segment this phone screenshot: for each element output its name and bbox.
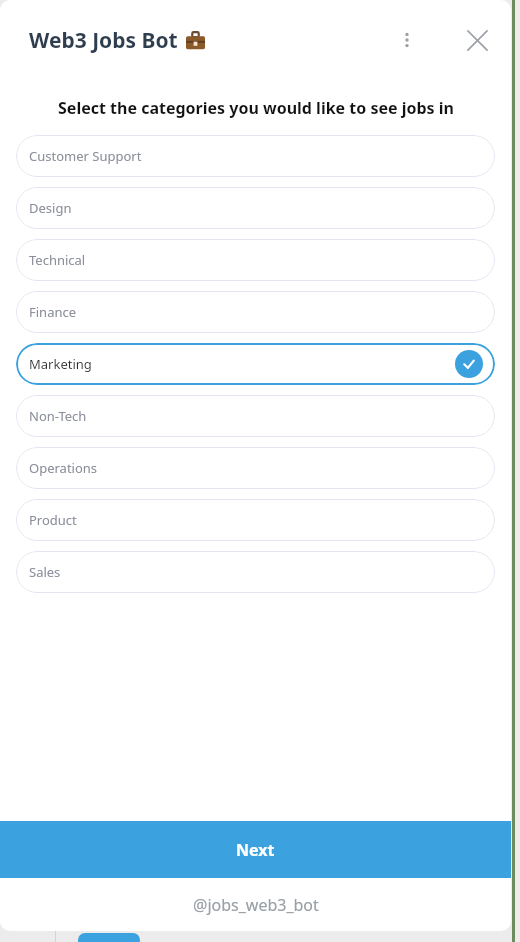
staticText: Technical (29, 251, 86, 269)
staticText: Customer Support (29, 147, 142, 165)
button[interactable]: Customer Support (16, 135, 495, 177)
staticText: Non-Tech (29, 407, 87, 425)
button[interactable]: Non-Tech (16, 395, 495, 437)
button[interactable]: Product (16, 499, 495, 541)
staticText: Marketing (29, 355, 92, 373)
staticText: Sales (29, 563, 61, 581)
button[interactable]: Technical (16, 239, 495, 281)
staticText: Finance (29, 303, 77, 321)
button[interactable]: Finance (16, 291, 495, 333)
staticText: Next (236, 839, 275, 861)
button[interactable]: Close (460, 23, 494, 57)
button[interactable]: Operations (16, 447, 495, 489)
button[interactable]: Next (0, 821, 511, 878)
button[interactable]: More options (390, 23, 424, 57)
staticText: Product (29, 511, 77, 529)
staticText: Web3 Jobs Bot (29, 26, 178, 55)
staticText: Design (29, 199, 72, 217)
button[interactable]: Sales (16, 551, 495, 593)
button[interactable]: Design (16, 187, 495, 229)
button[interactable]: Web3 Jobs Bot (29, 26, 205, 55)
staticText: Select the categories you would like to … (58, 97, 454, 119)
staticText: @jobs_web3_bot (193, 894, 319, 916)
staticText: Operations (29, 459, 98, 477)
button[interactable]: Marketing (16, 343, 495, 385)
